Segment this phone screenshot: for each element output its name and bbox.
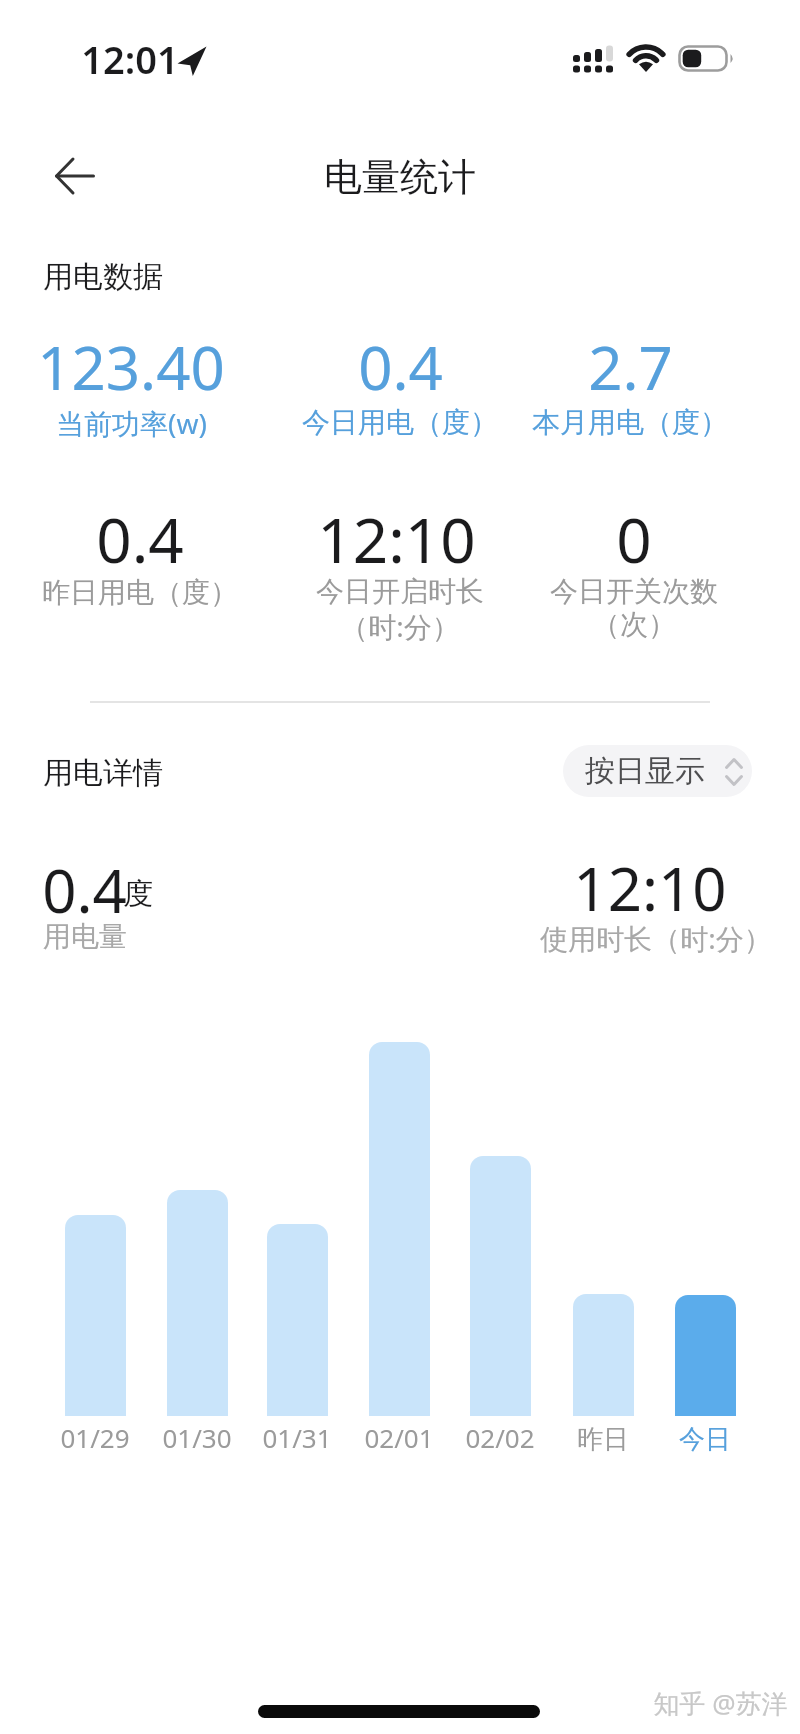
staticText: 当前功率(w) [56, 404, 207, 442]
staticText: 01/31 [262, 1420, 332, 1455]
staticText: 01/29 [60, 1420, 130, 1455]
staticText: 今日用电（度） [302, 405, 498, 440]
staticText: 0 [616, 497, 652, 581]
staticText: 02/01 [364, 1420, 434, 1455]
staticText: 2.7 [588, 326, 673, 408]
staticText: 今日开关次数 [550, 574, 718, 609]
staticText: 12:10 [573, 847, 727, 929]
staticText: 123.40 [37, 326, 225, 408]
staticText: 昨日用电（度） [42, 575, 238, 610]
staticText: 今日开启时长 [316, 574, 484, 609]
staticText: 昨日 [577, 1423, 629, 1456]
button[interactable] [267, 1224, 328, 1416]
staticText: （时:分） [340, 607, 460, 645]
staticText: 知乎 @苏洋 [653, 1685, 788, 1721]
staticText: 用电数据 [43, 258, 163, 296]
staticText: 电量统计 [324, 153, 476, 201]
staticText: 本月用电（度） [532, 405, 728, 440]
button[interactable] [573, 1294, 634, 1416]
staticText: （次） [592, 607, 676, 642]
button[interactable]: 按日显示 [563, 745, 752, 797]
staticText: 12:01 [81, 33, 179, 85]
staticText: 度 [123, 875, 153, 913]
staticText: 按日显示 [585, 752, 705, 790]
button[interactable] [470, 1156, 531, 1416]
staticText: 用电量 [43, 919, 127, 954]
staticText: 12:10 [317, 497, 476, 581]
button[interactable] [44, 148, 106, 204]
staticText: 0.4 [96, 497, 184, 581]
staticText: 0.4 [358, 326, 443, 408]
staticText: 今日 [679, 1423, 731, 1456]
staticText: 01/30 [162, 1420, 232, 1455]
staticText: 用电详情 [43, 754, 163, 792]
staticText: 02/02 [465, 1420, 535, 1455]
button[interactable] [167, 1190, 228, 1416]
staticText: 0.4 [42, 849, 127, 931]
button[interactable] [675, 1295, 736, 1416]
button[interactable] [65, 1215, 126, 1416]
staticText: 使用时长（时:分） [540, 919, 772, 957]
